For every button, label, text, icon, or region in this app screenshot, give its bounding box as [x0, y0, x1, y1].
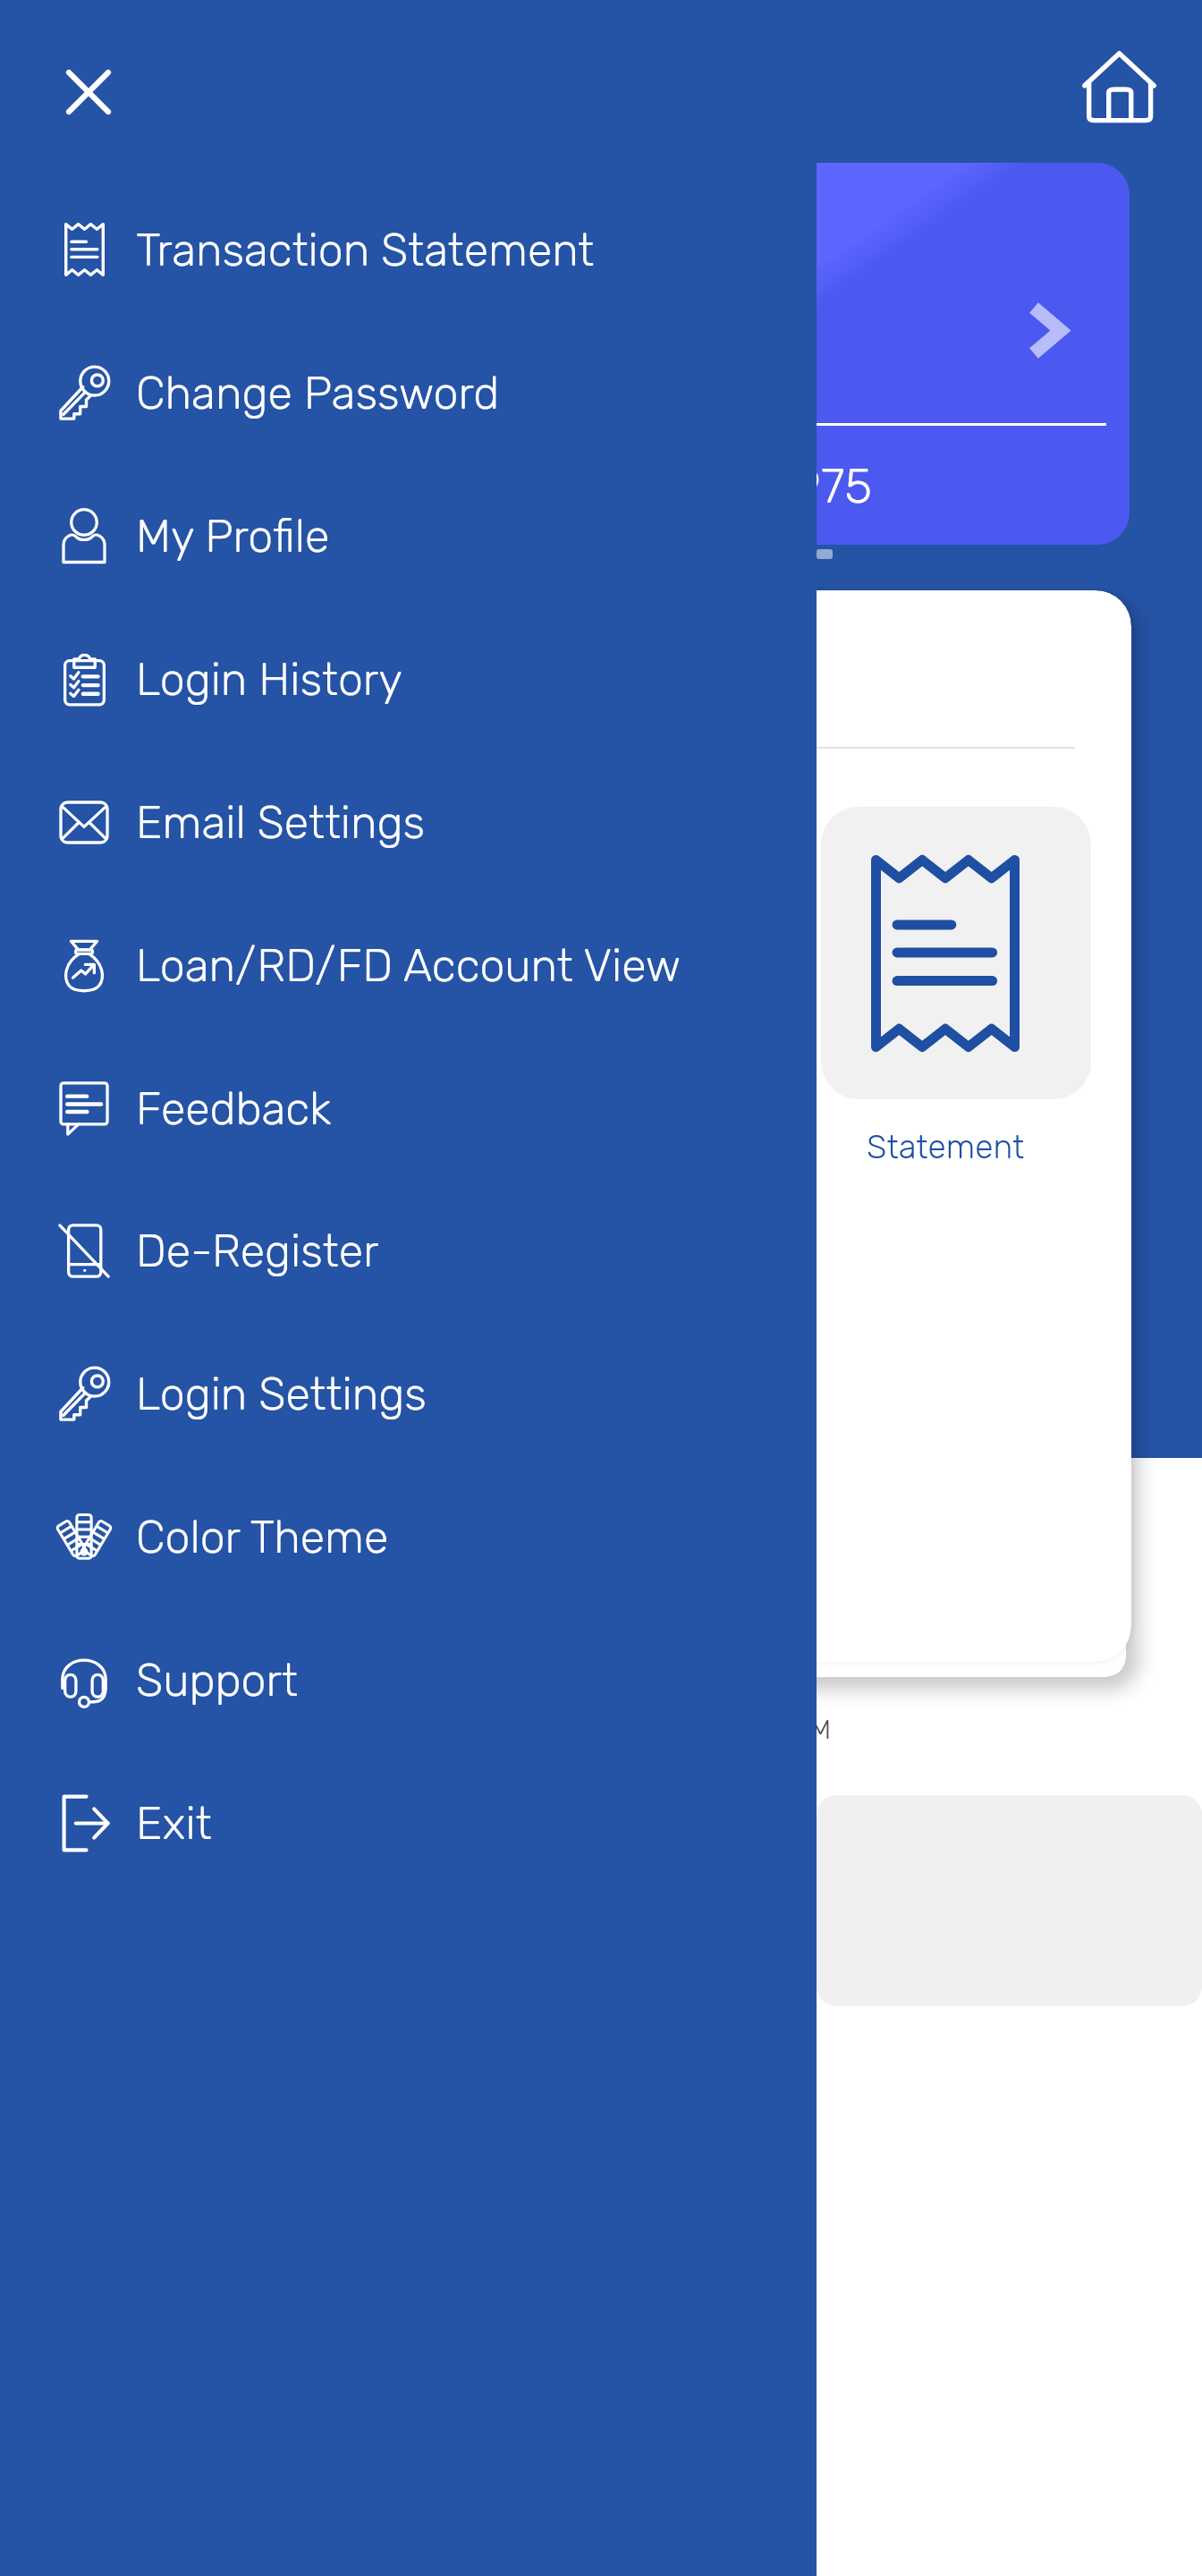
staticText: Change Password: [136, 367, 500, 419]
staticText: Exit: [136, 1797, 212, 1850]
button[interactable]: Home: [1070, 37, 1168, 135]
staticText: Login History: [136, 653, 402, 706]
staticText: Color Theme: [136, 1511, 389, 1563]
button[interactable]: Loan/RD/FD Account View: [0, 902, 817, 1028]
button[interactable]: Color Theme: [0, 1474, 817, 1599]
staticText: Feedback: [136, 1082, 332, 1135]
staticText: De-Register: [136, 1224, 379, 1277]
button[interactable]: De-Register: [0, 1188, 817, 1313]
staticText: XXXX XX9975: [647, 458, 873, 515]
staticText: Support: [136, 1654, 298, 1707]
button[interactable]: Email Settings: [0, 759, 817, 885]
staticText: Transaction Statement: [136, 224, 595, 276]
button[interactable]: Change Password: [0, 330, 817, 455]
button[interactable]: Close menu: [39, 43, 138, 141]
staticText: My Profile: [136, 510, 330, 563]
button[interactable]: Statement: [821, 807, 1091, 1099]
button[interactable]: Login Settings: [0, 1331, 817, 1456]
button[interactable]: Support: [0, 1617, 817, 1742]
staticText: Email Settings: [136, 796, 426, 849]
button[interactable]: Login History: [0, 616, 817, 741]
staticText: Loan/RD/FD Account View: [136, 939, 681, 992]
staticText: Login Settings: [136, 1368, 427, 1420]
button[interactable]: Feedback: [0, 1046, 817, 1171]
button[interactable]: Account card, view details: [647, 163, 1130, 545]
button[interactable]: Exit: [0, 1760, 817, 1885]
button[interactable]: Transaction Statement: [0, 187, 817, 312]
staticText: Statement: [867, 1127, 1025, 1166]
button[interactable]: My Profile: [0, 473, 817, 598]
staticText: Nearest ATM: [680, 1714, 832, 1746]
